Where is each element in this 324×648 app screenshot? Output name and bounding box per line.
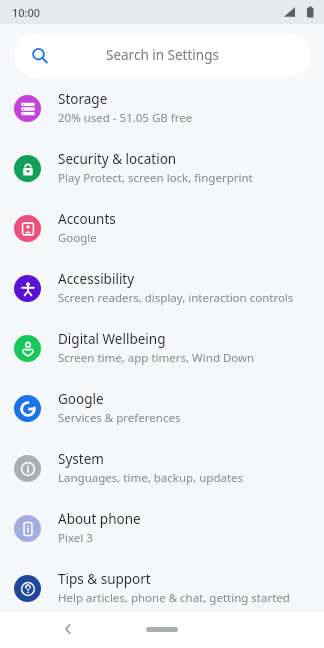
staticText: Languages, time, backup, updates <box>58 470 244 486</box>
staticText: Storage <box>58 90 108 108</box>
staticText: About phone <box>58 510 141 528</box>
staticText: System <box>58 450 104 468</box>
staticText: Screen readers, display, interaction con… <box>58 290 294 306</box>
staticText: 20% used - 51.05 GB free <box>58 110 193 126</box>
button[interactable]: Back <box>54 615 82 643</box>
button[interactable]: Storage <box>0 78 324 138</box>
button[interactable]: Home <box>140 620 184 638</box>
staticText: Services & preferences <box>58 410 181 426</box>
staticText: 10:00 <box>12 5 41 20</box>
button[interactable]: Security & location <box>0 138 324 198</box>
staticText: Tips & support <box>58 570 151 588</box>
staticText: Accounts <box>58 210 116 228</box>
staticText: Search in Settings <box>106 46 219 64</box>
button[interactable]: Google <box>0 378 324 438</box>
button[interactable]: Accounts <box>0 198 324 258</box>
staticText: Accessibility <box>58 270 135 288</box>
staticText: Google <box>58 390 104 408</box>
button[interactable]: About phone <box>0 498 324 558</box>
staticText: Pixel 3 <box>58 530 93 546</box>
staticText: Security & location <box>58 150 177 168</box>
staticText: Help articles, phone & chat, getting sta… <box>58 590 290 606</box>
button[interactable]: Digital Wellbeing <box>0 318 324 378</box>
button[interactable]: Tips & support <box>0 558 324 618</box>
button[interactable]: Search in Settings <box>14 33 310 77</box>
staticText: Play Protect, screen lock, fingerprint <box>58 170 253 186</box>
button[interactable]: Accessibility <box>0 258 324 318</box>
staticText: Screen time, app timers, Wind Down <box>58 350 255 366</box>
staticText: Digital Wellbeing <box>58 330 166 348</box>
button[interactable]: System <box>0 438 324 498</box>
staticText: Google <box>58 230 97 246</box>
